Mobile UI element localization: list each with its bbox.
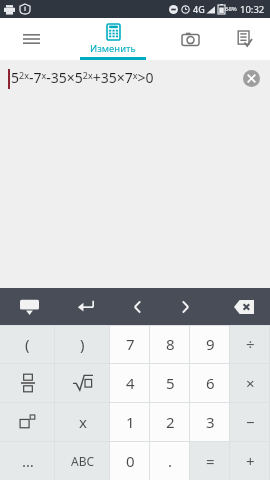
button[interactable]: −: [230, 402, 270, 441]
staticText: 68%: [225, 5, 237, 13]
button[interactable]: (: [0, 325, 55, 363]
button[interactable]: ): [55, 325, 110, 363]
staticText: 10:32: [240, 3, 265, 16]
button[interactable]: 1: [110, 402, 150, 441]
staticText: 8: [166, 334, 175, 354]
staticText: (: [25, 334, 30, 354]
button[interactable]: x: [55, 402, 110, 441]
button[interactable]: Enter: [58, 288, 113, 325]
staticText: 3: [206, 412, 215, 432]
button[interactable]: Previous: [113, 288, 161, 325]
button[interactable]: ÷: [230, 325, 270, 363]
button[interactable]: Fraction: [0, 363, 55, 402]
button[interactable]: 4: [110, 363, 150, 402]
staticText: −: [246, 412, 255, 432]
staticText: Изменить: [90, 42, 136, 55]
staticText: =: [206, 451, 215, 471]
button[interactable]: 8: [150, 325, 190, 363]
button[interactable]: Power: [0, 402, 55, 441]
button[interactable]: .: [150, 441, 190, 480]
staticText: 2: [166, 412, 175, 432]
staticText: 52x-7x-35×52x+35×7x>0: [11, 68, 154, 87]
button[interactable]: 2: [150, 402, 190, 441]
staticText: 5: [166, 373, 175, 393]
button[interactable]: Backspace: [218, 288, 270, 325]
button[interactable]: 3: [190, 402, 230, 441]
button[interactable]: More: [0, 441, 55, 480]
button[interactable]: Hide keyboard: [0, 288, 58, 325]
button[interactable]: 6: [190, 363, 230, 402]
button[interactable]: +: [230, 441, 270, 480]
staticText: 7: [126, 334, 135, 354]
button[interactable]: Camera: [163, 18, 218, 60]
button[interactable]: ABC: [55, 441, 110, 480]
staticText: ): [80, 334, 85, 354]
staticText: x: [79, 412, 87, 432]
staticText: 6: [206, 373, 215, 393]
staticText: ×: [246, 373, 255, 393]
button[interactable]: Next: [161, 288, 209, 325]
staticText: 4: [126, 373, 135, 393]
button[interactable]: Изменить: [62, 18, 163, 60]
button[interactable]: 7: [110, 325, 150, 363]
staticText: ABC: [71, 453, 95, 469]
staticText: 4G: [193, 3, 205, 15]
button[interactable]: 9: [190, 325, 230, 363]
staticText: +: [246, 451, 255, 471]
staticText: 1: [126, 412, 135, 432]
staticText: 9: [206, 334, 215, 354]
staticText: .: [168, 451, 173, 471]
button[interactable]: Tasks: [218, 18, 270, 60]
button[interactable]: Square root: [55, 363, 110, 402]
staticText: 0: [126, 451, 135, 471]
staticText: …: [22, 451, 34, 471]
button[interactable]: =: [190, 441, 230, 480]
staticText: ÷: [246, 334, 255, 354]
button[interactable]: 0: [110, 441, 150, 480]
button[interactable]: Menu: [0, 18, 62, 60]
button[interactable]: 5: [150, 363, 190, 402]
button[interactable]: Clear: [243, 70, 260, 87]
button[interactable]: ×: [230, 363, 270, 402]
